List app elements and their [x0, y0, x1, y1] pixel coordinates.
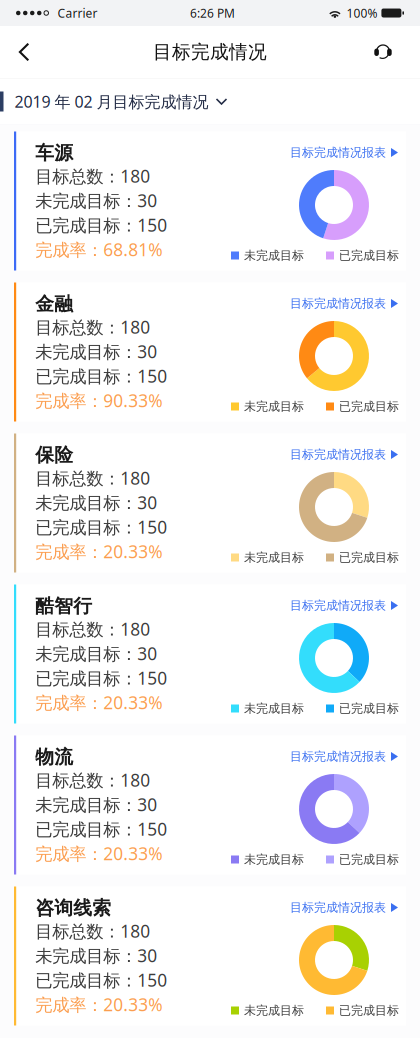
staticText: 保险 — [35, 443, 73, 466]
staticText: 完成率：20.33% — [35, 540, 162, 563]
staticText: 100% — [346, 5, 377, 21]
staticText: 目标完成情况报表 — [290, 447, 386, 462]
button[interactable]: 车源 — [14, 131, 406, 270]
button[interactable]: 物流 — [14, 735, 406, 874]
staticText: 已完成目标 — [339, 248, 399, 263]
button[interactable]: 金融 — [14, 282, 406, 421]
staticText: 已完成目标 — [339, 399, 399, 414]
staticText: 已完成目标 — [339, 852, 399, 867]
staticText: 目标完成情况报表 — [290, 296, 386, 311]
staticText: 未完成目标：30 — [35, 944, 157, 967]
staticText: 目标完成情况报表 — [290, 598, 386, 613]
staticText: 完成率：20.33% — [35, 842, 162, 865]
staticText: 未完成目标：30 — [35, 491, 157, 514]
staticText: 已完成目标 — [339, 550, 399, 565]
staticText: 咨询线索 — [35, 896, 111, 919]
staticText: 目标完成情况报表 — [290, 900, 386, 915]
staticText: 未完成目标：30 — [35, 189, 157, 212]
staticText: 目标完成情况 — [153, 40, 267, 63]
staticText: 目标完成情况报表 — [290, 749, 386, 764]
button[interactable]: 目标完成情况报表 — [290, 886, 399, 915]
staticText: 未完成目标 — [244, 1003, 304, 1018]
staticText: 未完成目标 — [244, 701, 304, 716]
staticText: 已完成目标：150 — [35, 666, 167, 689]
staticText: 2019 年 02 月目标完成情况 — [14, 91, 208, 112]
staticText: 未完成目标 — [244, 248, 304, 263]
staticText: 目标总数：180 — [35, 164, 150, 187]
staticText: 目标总数：180 — [35, 315, 150, 338]
staticText: 完成率：68.81% — [35, 238, 162, 261]
button[interactable]: 目标完成情况报表 — [290, 584, 399, 613]
button[interactable]: 保险 — [14, 433, 406, 572]
staticText: 完成率：90.33% — [35, 389, 162, 412]
staticText: 未完成目标 — [244, 550, 304, 565]
staticText: 已完成目标：150 — [35, 364, 167, 387]
staticText: 目标总数：180 — [35, 768, 150, 791]
staticText: 酷智行 — [35, 594, 92, 617]
staticText: 已完成目标：150 — [35, 515, 167, 538]
staticText: 完成率：20.33% — [35, 993, 162, 1016]
staticText: 物流 — [35, 745, 73, 768]
staticText: 未完成目标：30 — [35, 642, 157, 665]
button[interactable]: 目标完成情况报表 — [290, 282, 399, 311]
staticText: 已完成目标：150 — [35, 817, 167, 840]
staticText: 已完成目标 — [339, 701, 399, 716]
staticText: 目标总数：180 — [35, 466, 150, 489]
staticText: 6:26 PM — [190, 5, 235, 21]
staticText: 已完成目标：150 — [35, 213, 167, 236]
staticText: 金融 — [35, 292, 73, 315]
button[interactable]: 2019 年 02 月目标完成情况 — [0, 78, 420, 124]
button[interactable]: 目标完成情况报表 — [290, 433, 399, 462]
button[interactable]: 咨询线索 — [14, 886, 406, 1025]
staticText: 车源 — [35, 141, 73, 164]
button[interactable]: 目标完成情况报表 — [290, 131, 399, 160]
staticText: 未完成目标 — [244, 852, 304, 867]
staticText: 已完成目标 — [339, 1003, 399, 1018]
staticText: 未完成目标 — [244, 399, 304, 414]
button[interactable]: Back — [2, 29, 46, 75]
staticText: 目标完成情况报表 — [290, 145, 386, 160]
staticText: 未完成目标：30 — [35, 793, 157, 816]
staticText: 完成率：20.33% — [35, 691, 162, 714]
button[interactable]: 酷智行 — [14, 584, 406, 723]
button[interactable]: Customer service — [361, 29, 405, 75]
button[interactable]: 目标完成情况报表 — [290, 735, 399, 764]
staticText: 目标总数：180 — [35, 919, 150, 942]
staticText: 已完成目标：150 — [35, 968, 167, 991]
staticText: 目标总数：180 — [35, 617, 150, 640]
staticText: Carrier — [57, 5, 97, 21]
staticText: 未完成目标：30 — [35, 340, 157, 363]
